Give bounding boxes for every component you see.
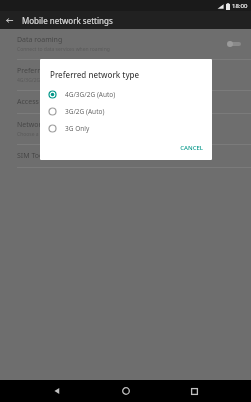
staticText: SIM Toolkit (17, 151, 54, 161)
staticText: 3G Only (65, 124, 90, 133)
staticText: Data roaming (17, 35, 63, 45)
button[interactable]: CANCEL (171, 140, 212, 156)
staticText: 18:00 (232, 2, 248, 10)
staticText: Choose a network operator (17, 131, 82, 138)
staticText: Connect to data services when roaming (17, 46, 110, 53)
staticText: 3G/2G (Auto) (65, 107, 105, 116)
staticText: Network operators (17, 120, 80, 130)
button[interactable]: Back (45, 380, 69, 402)
button[interactable]: Preferred network type (0, 60, 251, 90)
button[interactable]: 4G/3G/2G (Auto) (40, 86, 212, 103)
button[interactable]: Home (114, 380, 138, 402)
button[interactable]: Data roaming (0, 29, 251, 59)
button[interactable]: 3G Only (40, 120, 212, 137)
staticText: 4G/3G/2G (Auto) (17, 77, 56, 84)
staticText: Access Point Names (17, 97, 83, 107)
staticText: 4G/3G/2G (Auto) (65, 90, 116, 99)
button[interactable]: Back (0, 11, 18, 29)
staticText: Preferred network type (50, 69, 140, 80)
staticText: Mobile network settings (22, 15, 113, 26)
button[interactable]: Access Point Names (0, 91, 251, 113)
button[interactable]: Network operators (0, 114, 251, 144)
button[interactable]: 3G/2G (Auto) (40, 103, 212, 120)
button[interactable]: SIM Toolkit (0, 145, 251, 167)
button[interactable]: Data roaming toggle (227, 40, 243, 48)
button[interactable]: Recent apps (182, 380, 206, 402)
staticText: Preferred network type (17, 66, 94, 76)
staticText: CANCEL (180, 144, 203, 152)
